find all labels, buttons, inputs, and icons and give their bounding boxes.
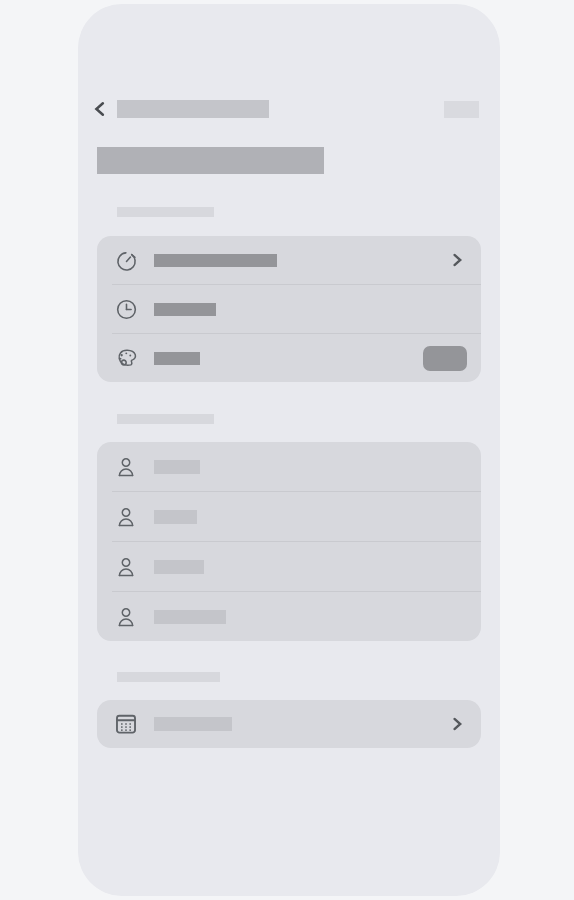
button[interactable]: Theme settings	[97, 334, 481, 382]
button[interactable]: Back	[86, 95, 114, 123]
button[interactable]: Toggle theme	[423, 346, 467, 371]
button[interactable]: Person 3	[97, 542, 481, 591]
button[interactable]: Person 2	[97, 492, 481, 541]
button[interactable]: Person 4	[97, 592, 481, 641]
button[interactable]: Person 1	[97, 442, 481, 491]
button[interactable]: Calendar settings	[97, 700, 481, 748]
button[interactable]: Timer settings	[97, 236, 481, 284]
button[interactable]: Clock settings	[97, 285, 481, 333]
